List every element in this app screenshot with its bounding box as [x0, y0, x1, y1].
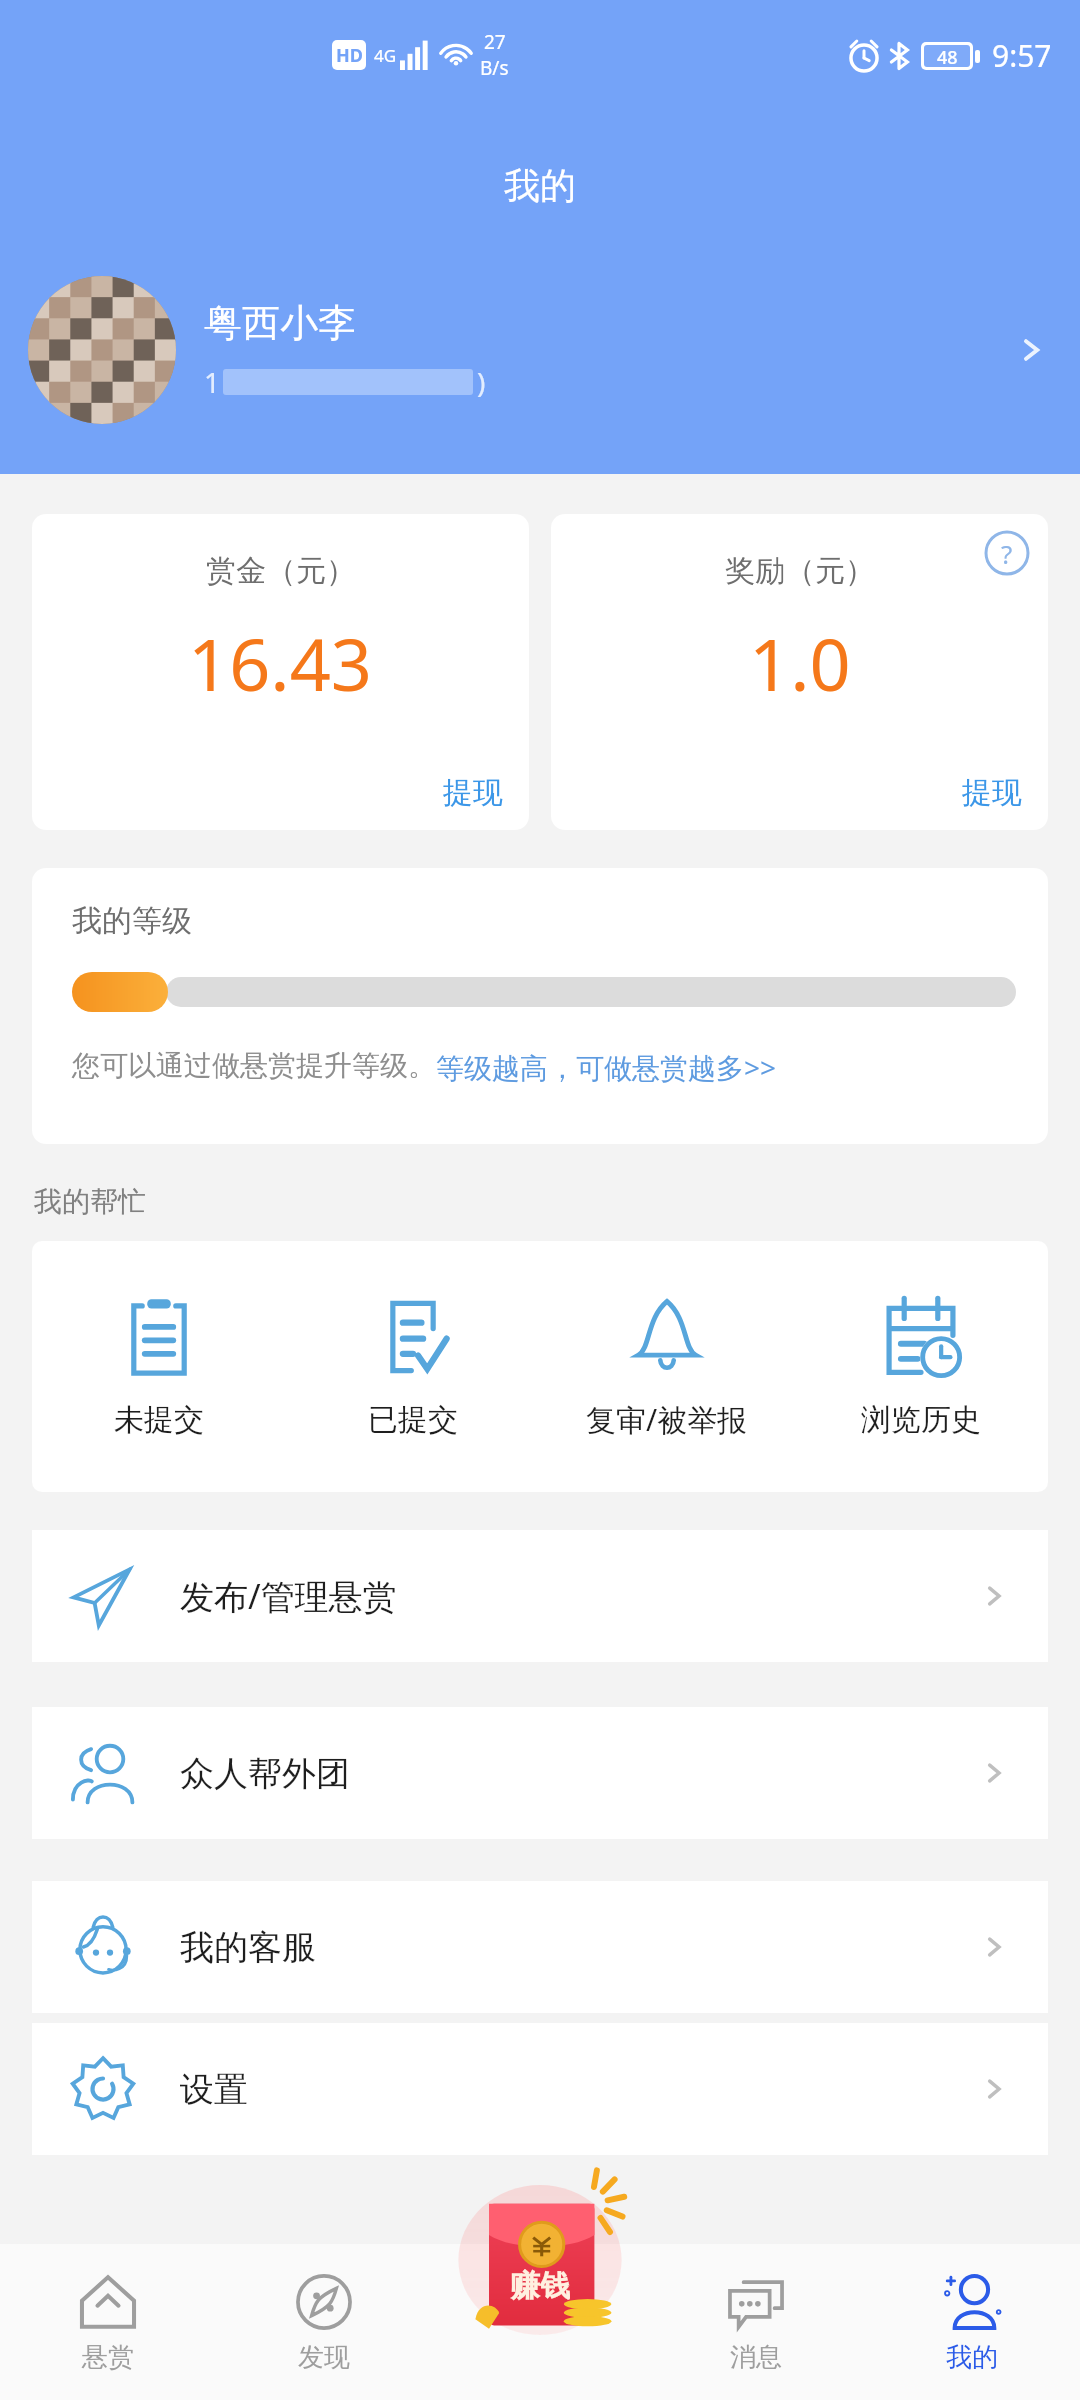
- staticText: 众人帮外团: [180, 1752, 976, 1795]
- staticText: 赏金（元）: [206, 552, 356, 590]
- staticText: 1: [204, 363, 221, 401]
- button[interactable]: 奖励（元）: [551, 514, 1048, 830]
- staticText: 16.43: [188, 614, 373, 712]
- staticText: 消息: [730, 2341, 782, 2374]
- button[interactable]: 粤西小李: [0, 270, 1080, 430]
- staticText: 您可以通过做悬赏提升等级。: [72, 1048, 436, 1083]
- button[interactable]: 我的: [864, 2244, 1080, 2400]
- staticText: 48: [937, 45, 958, 67]
- button[interactable]: 浏览历史: [794, 1241, 1048, 1492]
- button[interactable]: 悬赏: [0, 2244, 216, 2400]
- button[interactable]: 提现: [443, 774, 529, 830]
- button[interactable]: 未提交: [32, 1241, 286, 1492]
- staticText: 27: [484, 29, 506, 55]
- staticText: 4G: [374, 44, 397, 67]
- staticText: 9:57: [992, 35, 1052, 76]
- button[interactable]: Help: [984, 530, 1030, 576]
- staticText: 复审/被举报: [586, 1399, 748, 1440]
- staticText: 我的帮忙: [34, 1184, 146, 1219]
- staticText: 提现: [962, 774, 1022, 812]
- button[interactable]: 消息: [648, 2244, 864, 2400]
- button[interactable]: 发现: [216, 2244, 432, 2400]
- staticText: 等级越高，可做悬赏越多>>: [436, 1048, 777, 1086]
- button[interactable]: 我的等级: [32, 868, 1048, 1144]
- button[interactable]: 设置: [32, 2023, 1048, 2155]
- staticText: 发现: [298, 2341, 350, 2374]
- staticText: B/s: [480, 55, 509, 81]
- staticText: 1.0: [749, 614, 851, 712]
- staticText: ?: [1001, 536, 1013, 571]
- button[interactable]: 赚钱: [455, 2182, 625, 2338]
- staticText: 我的客服: [180, 1926, 976, 1969]
- staticText: HD: [336, 43, 363, 68]
- staticText: 我的: [504, 163, 576, 208]
- staticText: 未提交: [114, 1401, 204, 1439]
- staticText: 粤西小李: [204, 299, 356, 347]
- staticText: ): [477, 363, 486, 401]
- staticText: 已提交: [368, 1401, 458, 1439]
- staticText: 发布/管理悬赏: [180, 1573, 976, 1619]
- staticText: 设置: [180, 2068, 976, 2111]
- button[interactable]: 众人帮外团: [32, 1707, 1048, 1839]
- button[interactable]: 复审/被举报: [540, 1241, 794, 1492]
- button[interactable]: 已提交: [286, 1241, 540, 1492]
- button[interactable]: 我的客服: [32, 1881, 1048, 2013]
- staticText: 奖励（元）: [725, 552, 875, 590]
- button[interactable]: 提现: [962, 774, 1048, 830]
- staticText: 我的: [946, 2341, 998, 2374]
- button[interactable]: 发布/管理悬赏: [32, 1530, 1048, 1662]
- staticText: 赚钱: [510, 2267, 570, 2305]
- staticText: 提现: [443, 774, 503, 812]
- button[interactable]: 赏金（元）: [32, 514, 529, 830]
- staticText: 悬赏: [82, 2341, 134, 2374]
- staticText: 浏览历史: [861, 1401, 981, 1439]
- staticText: 我的等级: [72, 902, 192, 940]
